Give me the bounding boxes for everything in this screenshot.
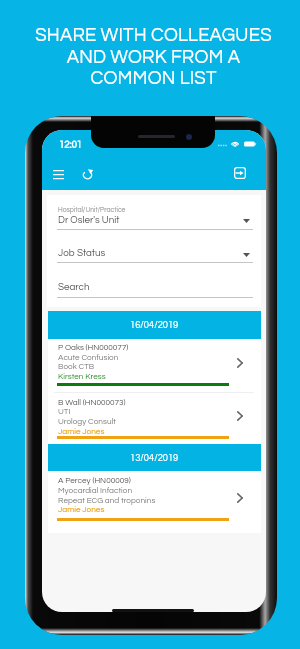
staticText: B Wall (HN000073) bbox=[58, 398, 126, 406]
staticText: 12:01 bbox=[59, 140, 82, 150]
staticText: Book CTB bbox=[58, 362, 95, 370]
button[interactable]: Refresh bbox=[75, 163, 99, 185]
staticText: 13/04/2019 bbox=[130, 453, 179, 463]
staticText: 16/04/2019 bbox=[130, 320, 179, 330]
button[interactable]: A Percey (HN00009) bbox=[48, 471, 261, 533]
staticText: Repeat ECG and troponins bbox=[58, 496, 156, 504]
staticText: Jamie Jones bbox=[58, 505, 105, 513]
staticText: Hospital/Unit/Practice bbox=[58, 206, 126, 213]
staticText: Kirsten Kress bbox=[58, 372, 106, 380]
button[interactable]: B Wall (HN000073) bbox=[48, 393, 261, 444]
staticText: Urology Consult bbox=[58, 417, 116, 425]
button[interactable]: Menu bbox=[46, 163, 70, 185]
staticText: Search bbox=[58, 282, 90, 292]
button[interactable]: P Oaks (HN000077) bbox=[48, 339, 261, 393]
staticText: Jamie Jones bbox=[58, 427, 105, 435]
staticText: P Oaks (HN000077) bbox=[58, 343, 129, 351]
staticText: Job Status bbox=[58, 248, 106, 258]
staticText: Myocardial Infaction bbox=[58, 486, 133, 494]
staticText: SHARE WITH COLLEAGUES AND WORK FROM A CO… bbox=[35, 26, 272, 88]
staticText: Acute Confusion bbox=[58, 353, 119, 361]
staticText: Dr Osler's Unit bbox=[58, 215, 120, 225]
staticText: UTI bbox=[58, 407, 71, 415]
staticText: A Percey (HN00009) bbox=[58, 476, 131, 484]
button[interactable]: Log out bbox=[228, 162, 252, 184]
